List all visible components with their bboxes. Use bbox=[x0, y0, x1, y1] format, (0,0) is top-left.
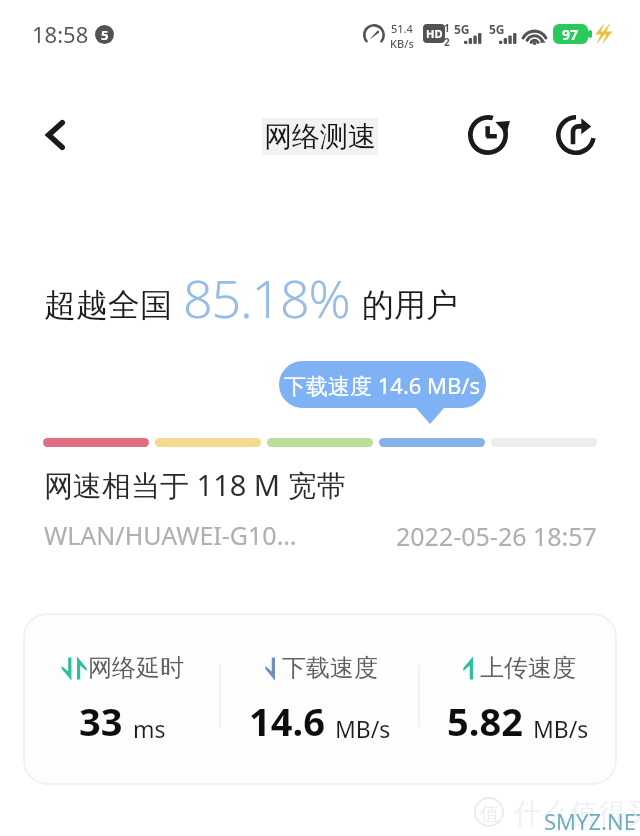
staticText: 网速相当于 118 M 宽带 bbox=[44, 465, 346, 505]
staticText: MB/s bbox=[533, 713, 589, 744]
staticText: 5G bbox=[489, 21, 505, 37]
staticText: 14.6 bbox=[249, 695, 325, 747]
staticText: 1 bbox=[444, 21, 450, 35]
staticText: 85.18% bbox=[183, 262, 350, 333]
staticText: 33 bbox=[79, 695, 123, 747]
staticText: 网络测速 bbox=[264, 119, 376, 154]
staticText: HD bbox=[426, 26, 443, 41]
staticText: 超越全国 bbox=[44, 285, 172, 325]
staticText: 2022-05-26 18:57 bbox=[396, 519, 597, 553]
staticText: SMYZ.NET bbox=[544, 806, 640, 836]
staticText: 5G bbox=[454, 21, 470, 37]
staticText: 18:58 bbox=[32, 19, 89, 49]
staticText: 5 bbox=[101, 26, 109, 44]
button[interactable]: 网络延时 bbox=[23, 613, 617, 785]
staticText: 97 bbox=[562, 25, 579, 44]
staticText: 2 bbox=[444, 35, 450, 49]
staticText: 上传速度 bbox=[480, 653, 576, 683]
staticText: 51.4 bbox=[391, 21, 413, 36]
button[interactable]: History bbox=[458, 105, 518, 165]
staticText: 网络延时 bbox=[88, 653, 184, 683]
staticText: 下载速度 bbox=[282, 653, 378, 683]
staticText: 的用户 bbox=[362, 285, 458, 325]
staticText: 5.82 bbox=[447, 695, 523, 747]
staticText: WLAN/HUAWEI-G10… bbox=[44, 518, 297, 552]
staticText: KB/s bbox=[390, 36, 414, 51]
button[interactable]: Share bbox=[546, 105, 606, 165]
button[interactable]: Back bbox=[24, 106, 82, 164]
button[interactable]: 下载速度 14.6 MB/s bbox=[279, 361, 486, 408]
staticText: 值 bbox=[480, 802, 499, 826]
staticText: ms bbox=[133, 713, 166, 744]
staticText: 下载速度 14.6 MB/s bbox=[284, 370, 481, 400]
staticText: 什么值得买 bbox=[514, 796, 640, 831]
staticText: MB/s bbox=[335, 713, 391, 744]
